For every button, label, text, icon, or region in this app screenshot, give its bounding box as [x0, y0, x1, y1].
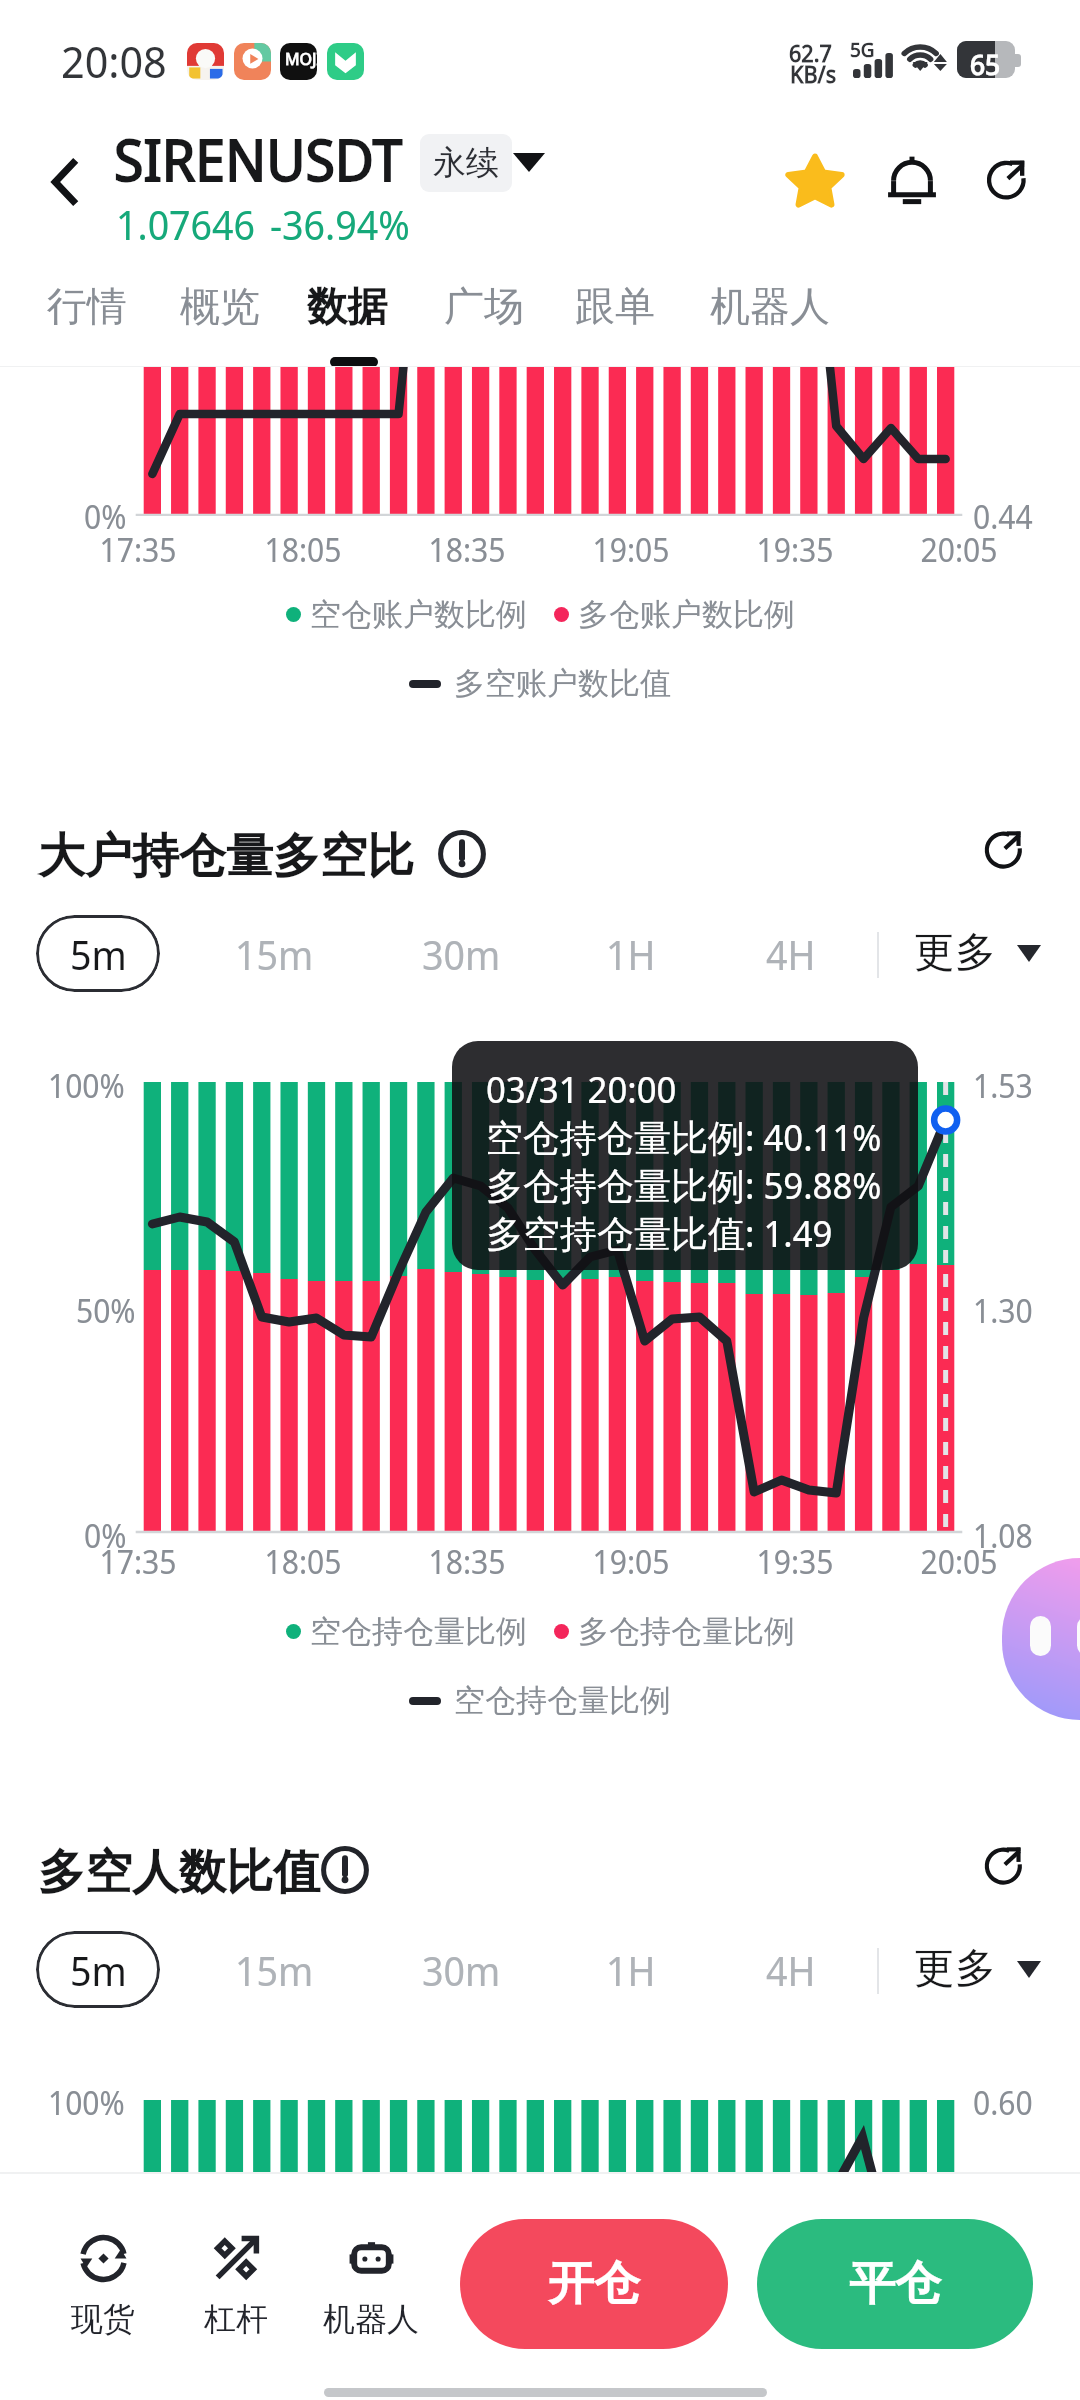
staticText: 15m [235, 927, 314, 981]
staticText: 现货 [71, 2299, 135, 2339]
staticText: 多仓持仓量比例: 59.88% [486, 1159, 882, 1210]
staticText: 15m [235, 1943, 314, 1997]
staticText: 0% [84, 1514, 127, 1558]
staticText: 平仓 [849, 2255, 941, 2313]
button[interactable]: 现货 [43, 2233, 163, 2339]
staticText: 跟单 [575, 281, 655, 331]
staticText: 杠杆 [204, 2299, 268, 2339]
staticText: 4H [766, 1943, 816, 1997]
button[interactable]: 15m [220, 915, 328, 992]
staticText: 19:05 [551, 1540, 711, 1584]
staticText: 20:08 [61, 31, 167, 91]
staticText: 18:05 [223, 528, 383, 572]
button[interactable]: 1H [577, 1931, 685, 2008]
staticText: 30m [422, 927, 501, 981]
staticText: 多空人数比值 [38, 1843, 320, 1902]
button[interactable]: 数据 [289, 252, 405, 367]
staticText: 19:35 [715, 1540, 875, 1584]
staticText: 1H [606, 927, 656, 981]
button[interactable]: Open detail [963, 808, 1045, 890]
button[interactable]: 更多 [914, 1943, 1041, 1995]
button[interactable]: 15m [220, 1931, 328, 2008]
staticText: SIRENUSDT [114, 120, 403, 198]
staticText: 0% [84, 495, 127, 539]
staticText: 50% [76, 1289, 136, 1333]
staticText: 空仓持仓量比例 [454, 1681, 671, 1720]
button[interactable]: 开仓 [460, 2219, 728, 2349]
staticText: 多空持仓量比值: 1.49 [486, 1207, 833, 1258]
staticText: 20:05 [879, 1540, 1039, 1584]
staticText: 概览 [180, 281, 260, 331]
staticText: 17:35 [58, 528, 218, 572]
button[interactable]: 平仓 [757, 2219, 1033, 2349]
button[interactable]: 跟单 [557, 252, 673, 367]
button[interactable]: 1H [577, 915, 685, 992]
staticText: 5G [850, 36, 875, 63]
button[interactable]: Share [963, 135, 1051, 223]
staticText: 18:35 [387, 1540, 547, 1584]
staticText: 17:35 [58, 1540, 218, 1584]
button[interactable]: 4H [737, 915, 845, 992]
staticText: 更多 [914, 927, 996, 979]
staticText: 1.08 [973, 1514, 1033, 1558]
staticText: 0.44 [973, 495, 1033, 539]
staticText: 1.07646 [116, 197, 256, 251]
staticText: MOJI [285, 47, 322, 70]
button[interactable]: 5m [36, 915, 160, 992]
button[interactable]: AI assistant [1002, 1558, 1080, 1720]
button[interactable]: 30m [407, 915, 515, 992]
button[interactable]: 行情 [29, 252, 145, 367]
button[interactable]: 4H [737, 1931, 845, 2008]
staticText: 19:35 [715, 528, 875, 572]
staticText: 更多 [914, 1943, 996, 1995]
staticText: 开仓 [548, 2255, 640, 2313]
staticText: 20:05 [879, 528, 1039, 572]
staticText: 100% [48, 1064, 125, 1108]
staticText: 空仓账户数比例 [310, 595, 527, 634]
staticText: 广场 [444, 281, 524, 331]
button[interactable]: Favorite [771, 136, 859, 224]
staticText: -36.94% [270, 197, 410, 251]
staticText: 机器人 [323, 2299, 419, 2339]
staticText: 行情 [47, 281, 127, 331]
staticText: KB/s [790, 58, 837, 89]
staticText: 5m [70, 1943, 127, 1997]
staticText: 数据 [307, 281, 387, 331]
staticText: 65 [970, 45, 1001, 78]
staticText: 62.7 [789, 37, 832, 68]
button[interactable]: Open detail [963, 1824, 1045, 1906]
staticText: 空仓持仓量比例: 40.11% [486, 1111, 882, 1162]
button[interactable]: 5m [36, 1931, 160, 2008]
staticText: 1H [606, 1943, 656, 1997]
staticText: 03/31 20:00 [486, 1063, 677, 1113]
staticText: 0.60 [973, 2081, 1033, 2125]
staticText: 18:35 [387, 528, 547, 572]
staticText: 5m [70, 927, 127, 981]
button[interactable]: Back [24, 140, 108, 224]
button[interactable]: 广场 [426, 252, 542, 367]
staticText: 18:05 [223, 1540, 383, 1584]
staticText: 100% [48, 2081, 125, 2125]
staticText: 空仓持仓量比例 [310, 1612, 527, 1651]
staticText: 多仓账户数比例 [578, 595, 795, 634]
staticText: 1.30 [973, 1289, 1033, 1333]
button[interactable]: 概览 [162, 252, 278, 367]
button[interactable]: Price alert [868, 135, 956, 223]
button[interactable]: 机器人 [692, 252, 848, 367]
button[interactable]: 机器人 [311, 2233, 431, 2339]
staticText: 大户持仓量多空比 [38, 827, 414, 886]
staticText: 多空账户数比值 [454, 664, 671, 703]
staticText: 多仓持仓量比例 [578, 1612, 795, 1651]
staticText: 30m [422, 1943, 501, 1997]
button[interactable]: 更多 [914, 927, 1041, 979]
staticText: 19:05 [551, 528, 711, 572]
staticText: 1.53 [973, 1064, 1033, 1108]
staticText: 永续 [433, 142, 499, 184]
button[interactable]: 杠杆 [176, 2233, 296, 2339]
button[interactable]: 30m [407, 1931, 515, 2008]
staticText: 机器人 [710, 281, 830, 331]
staticText: 4H [766, 927, 816, 981]
